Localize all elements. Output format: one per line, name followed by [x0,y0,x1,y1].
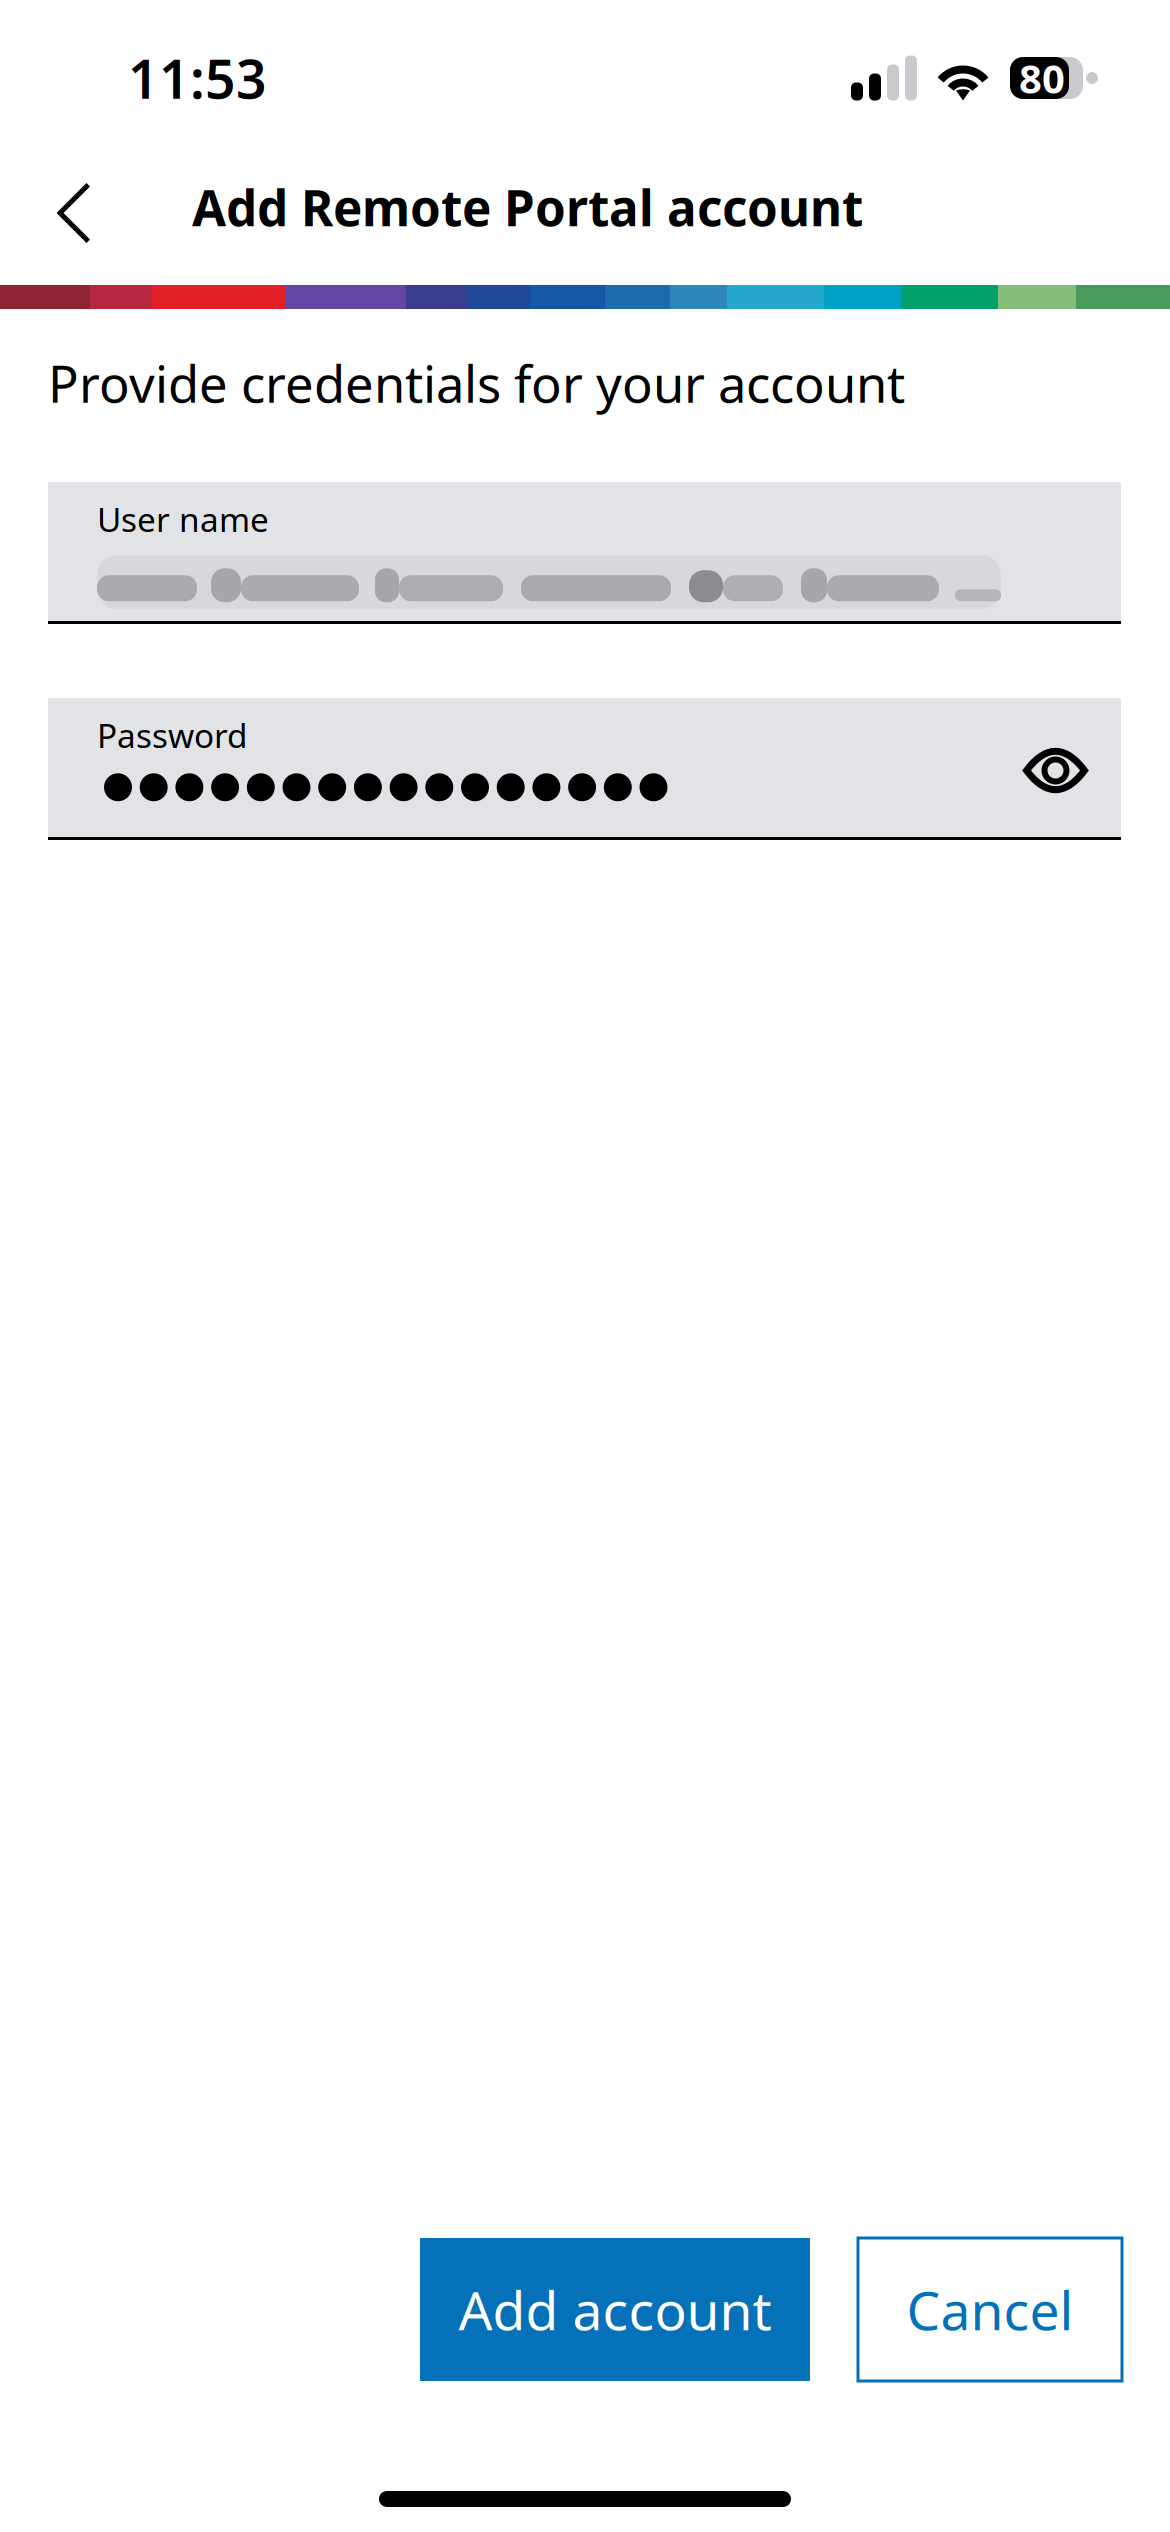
button[interactable]: Back [0,145,192,269]
button[interactable]: Add account [420,2238,810,2381]
staticText: Add Remote Portal account [192,174,863,240]
staticText: Password [97,713,248,757]
staticText: User name [97,497,269,541]
staticText: Cancel [906,2274,1073,2345]
staticText: 11:53 [128,43,267,113]
staticText: Add account [458,2274,771,2345]
button[interactable]: Cancel [858,2238,1122,2381]
button[interactable]: Show password [990,699,1121,838]
staticText: Provide credentials for your account [48,349,905,417]
staticText: 80 [1019,51,1065,104]
